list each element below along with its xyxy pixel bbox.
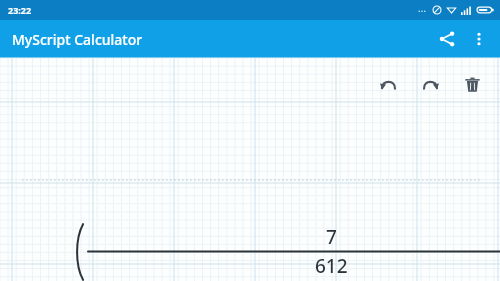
staticText: 612 [315,253,348,279]
staticText: MyScript Calculator [12,30,143,49]
staticText: 23:22 [8,4,32,16]
button[interactable]: Undo [370,66,406,102]
button[interactable]: More options [464,24,494,54]
button[interactable]: Redo [412,66,448,102]
button[interactable]: Delete [454,66,490,102]
staticText: 7 [326,224,337,250]
button[interactable]: Share [430,22,464,56]
